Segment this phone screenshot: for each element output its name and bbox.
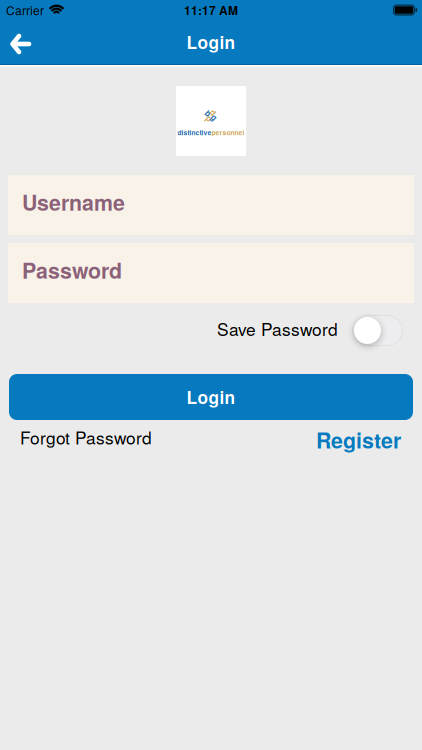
button[interactable]: Login [9,374,413,420]
button[interactable]: Forgot Password [20,428,152,452]
staticText: Login [186,30,235,54]
staticText: Carrier [6,2,44,18]
staticText: p [206,113,211,124]
staticText: Forgot Password [20,425,152,449]
staticText: b [205,108,210,119]
staticText: Login [186,385,235,409]
button[interactable]: Save Password [352,315,403,346]
staticText: personnel [211,128,244,137]
staticText: g [211,112,216,123]
staticText: distinctive [177,128,211,137]
button[interactable]: Back [0,20,30,63]
staticText: Password [22,255,122,285]
staticText: 11:17 AM [184,2,238,18]
button[interactable]: Register [316,425,401,455]
staticText: Username [22,187,125,217]
staticText: Save Password [217,316,338,341]
staticText: d [210,107,215,118]
staticText: Register [316,425,401,455]
